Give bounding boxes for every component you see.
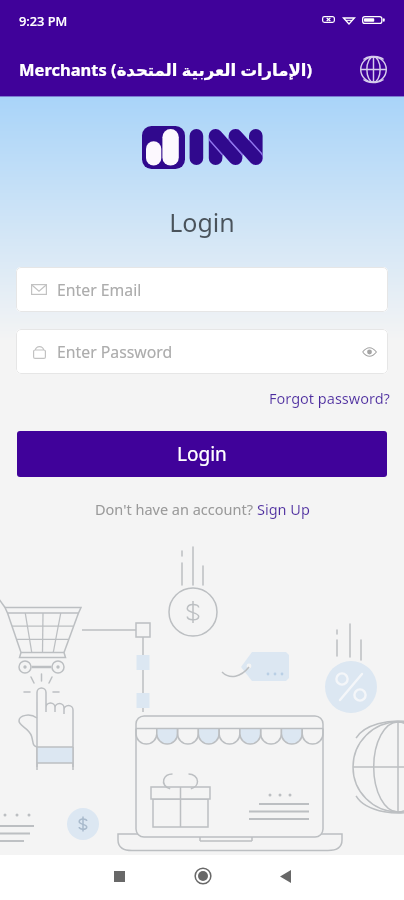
staticText: Login bbox=[0, 205, 404, 239]
button[interactable]: Sign Up bbox=[257, 499, 310, 519]
button[interactable]: Forgot password? bbox=[269, 388, 390, 408]
button[interactable]: Back bbox=[265, 856, 305, 896]
staticText: 9:23 PM bbox=[19, 12, 68, 29]
button[interactable]: Enter Email bbox=[16, 267, 388, 312]
staticText: Merchants (الإمارات العربية المتحدة) bbox=[19, 58, 313, 80]
staticText: Login bbox=[177, 441, 227, 467]
staticText: Don't have an account? bbox=[95, 499, 257, 519]
staticText: Forgot password? bbox=[269, 388, 390, 408]
staticText: Enter Password bbox=[57, 341, 173, 363]
staticText: Sign Up bbox=[257, 499, 310, 519]
button[interactable]: Home bbox=[183, 856, 223, 896]
button[interactable]: Enter Password bbox=[16, 329, 388, 374]
button[interactable]: Login bbox=[17, 431, 387, 477]
staticText: Enter Email bbox=[57, 279, 142, 301]
button[interactable]: Recents bbox=[99, 856, 139, 896]
button[interactable]: Show password bbox=[357, 340, 381, 364]
button[interactable]: Change language bbox=[355, 51, 391, 87]
